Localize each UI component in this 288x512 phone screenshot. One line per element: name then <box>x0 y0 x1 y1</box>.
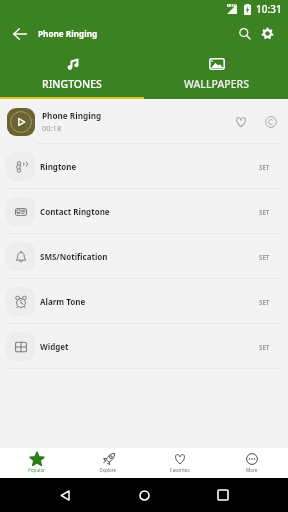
button[interactable]: Play <box>7 108 35 136</box>
button[interactable]: More <box>216 448 288 478</box>
staticText: RINGTONES <box>42 77 102 91</box>
button[interactable]: WALLPAPERS <box>144 50 288 99</box>
staticText: SET <box>259 163 270 171</box>
button[interactable]: SMS/Notification <box>0 234 288 279</box>
button[interactable]: Favorite <box>226 107 256 137</box>
staticText: SMS/Notification <box>40 251 108 262</box>
staticText: SET <box>259 253 270 261</box>
staticText: Phone Ringing <box>38 28 98 39</box>
staticText: Ringtone <box>40 161 77 172</box>
button[interactable]: Widget <box>0 324 288 369</box>
button[interactable]: Popular <box>0 448 72 478</box>
button[interactable]: Favorites <box>144 448 216 478</box>
staticText: 00:18 <box>42 123 62 133</box>
button[interactable]: System back <box>51 481 79 509</box>
staticText: Widget <box>40 341 69 352</box>
staticText: 10:31 <box>256 2 282 16</box>
button[interactable]: Explore <box>72 448 144 478</box>
button[interactable]: Contact Ringtone <box>0 189 288 234</box>
button[interactable]: Recents <box>209 481 237 509</box>
staticText: Contact Ringtone <box>40 206 110 217</box>
staticText: SET <box>259 208 270 216</box>
button[interactable]: Alarm Tone <box>0 279 288 324</box>
button[interactable]: Ringtone <box>0 144 288 189</box>
staticText: Popular <box>28 467 45 473</box>
staticText: WALLPAPERS <box>184 77 249 91</box>
button[interactable]: Search <box>233 17 256 50</box>
staticText: Favorites <box>170 467 190 473</box>
staticText: SET <box>259 343 270 351</box>
button[interactable]: Home <box>130 481 158 509</box>
staticText: Phone Ringing <box>42 110 102 121</box>
staticText: More <box>246 467 258 473</box>
staticText: Explore <box>100 467 117 473</box>
button[interactable]: Back <box>5 17 35 50</box>
button[interactable]: Copyright <box>256 107 286 137</box>
staticText: SET <box>259 298 270 306</box>
button[interactable]: Settings <box>256 17 279 50</box>
button[interactable]: RINGTONES <box>0 50 144 99</box>
staticText: Alarm Tone <box>40 296 86 307</box>
